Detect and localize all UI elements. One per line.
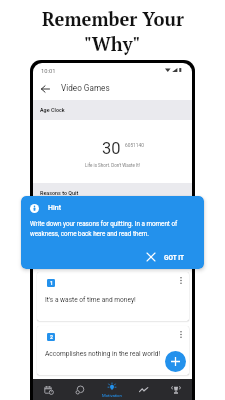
button[interactable]: Achievements: [160, 379, 192, 400]
staticText: 1: [50, 280, 53, 286]
staticText: 6051140: [125, 143, 144, 149]
button[interactable]: Add reason: [165, 351, 186, 372]
staticText: Remember Your: [42, 7, 184, 32]
button[interactable]: GOT IT: [160, 250, 189, 266]
staticText: 10:01: [41, 68, 56, 75]
staticText: Reasons to Quit: [40, 190, 79, 196]
staticText: Write down your reasons for quitting. In…: [30, 220, 178, 238]
staticText: It's a waste of time and money!: [45, 296, 136, 304]
staticText: GOT IT: [164, 254, 185, 262]
staticText: Life is Short. Don't Waste It!: [85, 163, 140, 168]
staticText: Video Games: [61, 83, 110, 93]
staticText: Accomplishes nothing in the real world!: [45, 350, 161, 358]
button[interactable]: 2: [37, 326, 189, 375]
button[interactable]: More options: [175, 329, 186, 340]
staticText: "Why": [84, 32, 141, 57]
button[interactable]: Health: [64, 379, 96, 400]
button[interactable]: Back: [38, 82, 52, 96]
staticText: Age Clock: [40, 107, 65, 113]
staticText: 2: [50, 334, 53, 340]
button[interactable]: History: [33, 379, 64, 400]
button[interactable]: Dismiss: [143, 249, 158, 264]
button[interactable]: More options: [175, 275, 186, 286]
staticText: 30: [102, 139, 121, 158]
button[interactable]: 1: [37, 272, 189, 321]
button[interactable]: Motivation: [96, 379, 128, 400]
staticText: Hint: [48, 204, 61, 212]
staticText: Motivation: [102, 393, 122, 398]
button[interactable]: Progress: [128, 379, 160, 400]
